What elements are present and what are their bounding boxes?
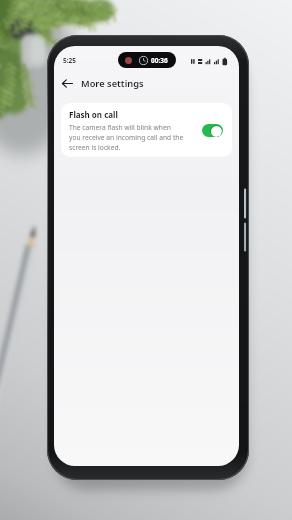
staticText: 00:36: [151, 56, 168, 65]
staticText: 5:25: [63, 56, 76, 65]
button[interactable]: Flash on call: [61, 103, 232, 157]
button[interactable]: [202, 124, 223, 137]
button[interactable]: [59, 75, 75, 91]
staticText: Flash on call: [69, 109, 118, 120]
staticText: More settings: [81, 77, 144, 90]
staticText: The camera flash will blink when you rec…: [69, 123, 184, 152]
